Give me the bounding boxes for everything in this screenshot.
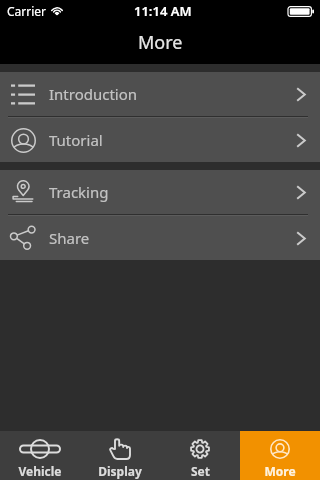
button[interactable]: Display <box>80 431 160 480</box>
staticText: Introduction <box>49 84 138 104</box>
other: Open <box>296 231 306 246</box>
other: Open <box>296 87 306 102</box>
button[interactable]: Tracking <box>0 170 320 214</box>
staticText: Tracking <box>49 182 109 202</box>
staticText: More <box>138 30 183 55</box>
other: Open <box>296 185 306 200</box>
button[interactable]: More <box>240 431 320 480</box>
staticText: Display <box>98 463 142 479</box>
button[interactable]: Tutorial <box>0 118 320 162</box>
staticText: 11:14 AM <box>134 2 192 20</box>
staticText: Set <box>191 463 210 479</box>
other: Open <box>296 133 306 148</box>
staticText: Carrier <box>7 3 47 19</box>
button[interactable]: Share <box>0 216 320 260</box>
staticText: Vehicle <box>18 463 62 479</box>
staticText: Tutorial <box>49 130 103 150</box>
staticText: Share <box>49 228 90 248</box>
staticText: More <box>264 463 296 479</box>
button[interactable]: Set <box>160 431 240 480</box>
button[interactable]: Vehicle <box>0 431 80 480</box>
button[interactable]: Introduction <box>0 72 320 116</box>
